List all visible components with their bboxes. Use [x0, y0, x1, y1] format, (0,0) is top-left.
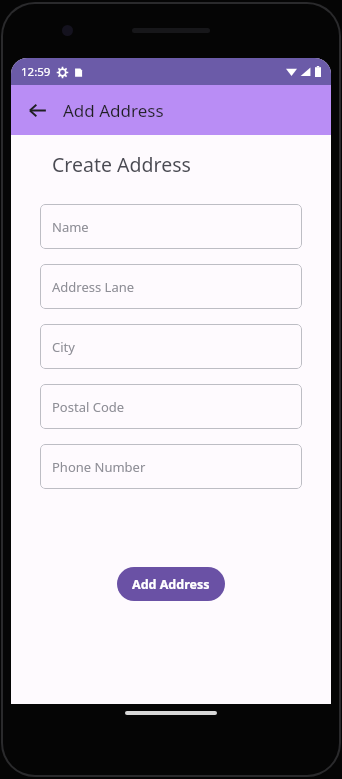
staticText: Add Address — [132, 576, 210, 593]
staticText: Postal Code — [52, 398, 125, 416]
staticText: 12:59 — [21, 64, 51, 80]
button[interactable]: Add Address — [117, 567, 225, 601]
staticText: Address Lane — [52, 278, 135, 296]
button[interactable]: Address Lane — [40, 264, 302, 309]
staticText: Add Address — [63, 99, 164, 122]
staticText: City — [52, 338, 75, 356]
button[interactable]: Back — [23, 96, 51, 124]
button[interactable]: Postal Code — [40, 384, 302, 429]
staticText: Create Address — [52, 151, 191, 178]
button[interactable]: Phone Number — [40, 444, 302, 489]
button[interactable]: Name — [40, 204, 302, 249]
staticText: Name — [52, 218, 89, 236]
button[interactable]: City — [40, 324, 302, 369]
staticText: Phone Number — [52, 458, 146, 476]
